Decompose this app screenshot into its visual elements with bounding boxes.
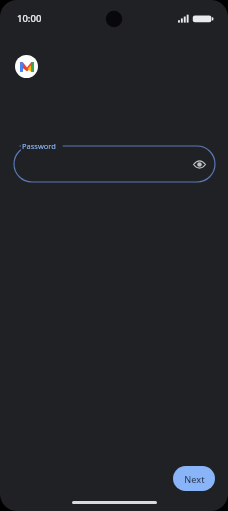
button[interactable]: Show password [188,153,210,175]
staticText: 10:00 [17,12,42,25]
button[interactable]: Next [173,466,215,491]
staticText: Next [184,473,205,485]
button[interactable]: Gmail [15,55,38,78]
button[interactable]: Show password [14,146,215,182]
staticText: Password [22,141,56,151]
